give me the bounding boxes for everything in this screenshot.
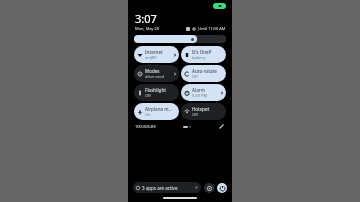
staticText: 5:30 PM [192, 93, 208, 98]
staticText: Alarm [192, 87, 205, 93]
button[interactable]: Edit tiles [218, 123, 225, 130]
staticText: drive mod [145, 74, 165, 79]
staticText: 3:07 [135, 11, 157, 26]
staticText: amJ8Y [145, 55, 157, 60]
button[interactable]: Internet [134, 46, 179, 63]
button[interactable]: It's OneP [181, 46, 226, 63]
staticText: Off [192, 74, 198, 79]
staticText: 100:005:89 [135, 124, 156, 129]
staticText: Mon, May 26 [135, 26, 160, 31]
button[interactable]: Power [217, 183, 227, 193]
staticText: Flashlight [145, 87, 166, 93]
staticText: On [145, 112, 151, 117]
staticText: Until 11:00 AM [198, 26, 226, 31]
staticText: Off [192, 112, 198, 117]
button[interactable]: Auto-rotate [181, 65, 226, 82]
button[interactable]: Brightness [134, 35, 197, 43]
button[interactable]: Alarm [181, 84, 226, 101]
button[interactable]: Airplane m.. [134, 103, 179, 120]
staticText: Airplane m.. [145, 106, 171, 112]
button[interactable]: 3 apps are active [133, 182, 201, 193]
staticText: Auto-rotate [192, 68, 217, 74]
staticText: Hotspot [192, 106, 210, 112]
button[interactable]: Settings [204, 183, 214, 193]
button[interactable]: Flashlight [134, 84, 179, 101]
staticText: battery [192, 55, 206, 60]
staticText: Modes [145, 68, 160, 74]
button[interactable]: Modes [134, 65, 179, 82]
staticText: Off [145, 93, 151, 98]
button[interactable]: Hotspot [181, 103, 226, 120]
staticText: It's OneP [192, 49, 212, 55]
staticText: Internet [145, 49, 163, 55]
staticText: 3 apps are active [142, 185, 178, 191]
